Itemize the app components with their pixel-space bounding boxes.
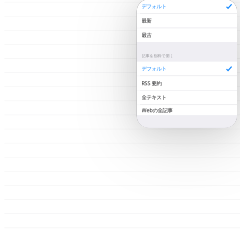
staticText: 最新 bbox=[142, 17, 152, 24]
staticText: 全テキスト bbox=[142, 94, 167, 101]
button[interactable]: Webの全記事 bbox=[137, 105, 237, 115]
staticText: デフォルト bbox=[142, 3, 167, 10]
staticText: RSS 要約 bbox=[142, 79, 162, 87]
staticText: 最古 bbox=[142, 32, 152, 39]
button[interactable]: RSS 要約 bbox=[137, 76, 237, 90]
staticText: デフォルト bbox=[142, 65, 167, 72]
button[interactable]: 全テキスト bbox=[137, 91, 237, 104]
button[interactable]: 記事を別枠で開く bbox=[137, 42, 237, 62]
button[interactable]: デフォルト bbox=[137, 0, 237, 13]
button[interactable]: 最新 bbox=[137, 14, 237, 28]
staticText: Webの全記事 bbox=[142, 107, 173, 114]
button[interactable]: デフォルト bbox=[137, 62, 237, 76]
staticText: 記事を別枠で開く bbox=[142, 53, 174, 58]
button[interactable]: 最古 bbox=[137, 28, 237, 42]
